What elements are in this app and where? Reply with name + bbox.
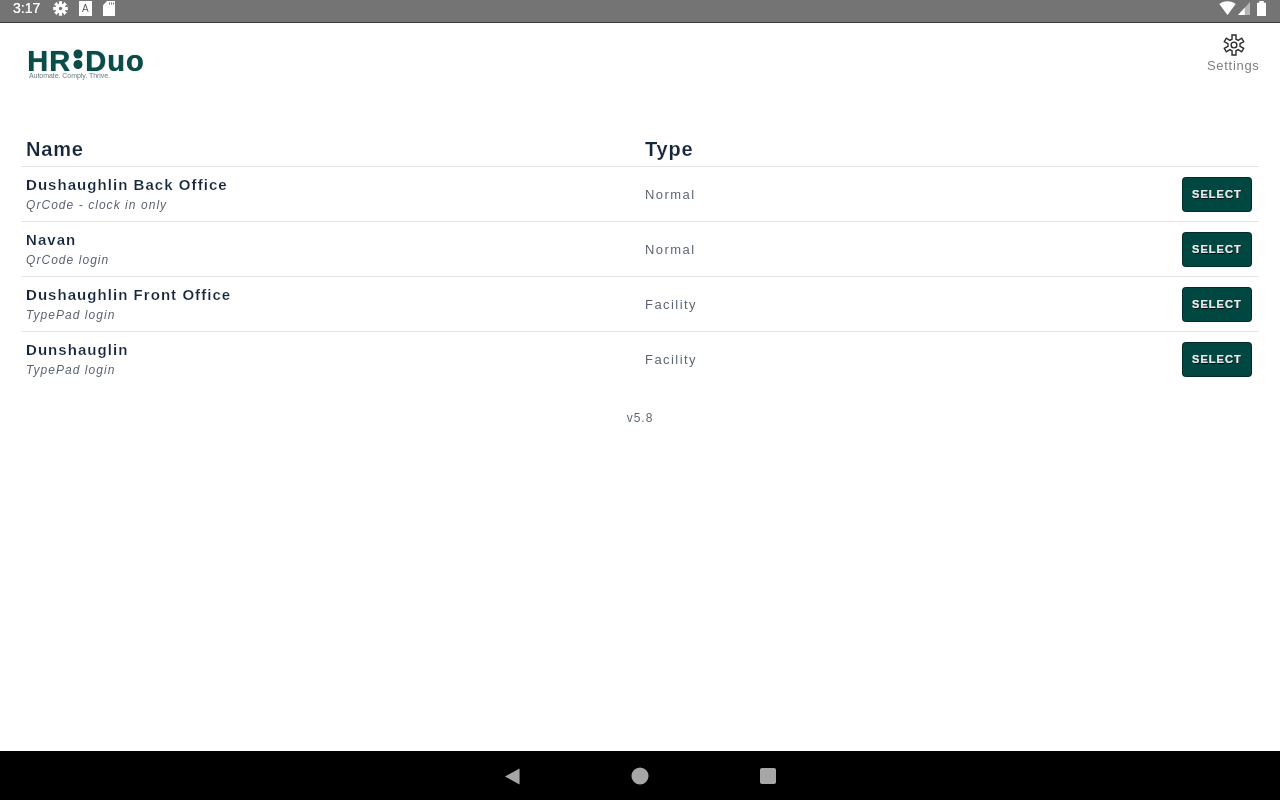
staticText: Dushaughlin Front Office bbox=[26, 286, 232, 303]
staticText: QrCode - clock in only bbox=[26, 198, 168, 211]
button[interactable]: Dunshauglin bbox=[0, 332, 1280, 387]
button[interactable]: Back bbox=[448, 751, 576, 800]
staticText: SELECT bbox=[1192, 353, 1242, 365]
button[interactable]: SELECT bbox=[1182, 342, 1252, 377]
button[interactable]: Home bbox=[576, 751, 704, 800]
staticText: SELECT bbox=[1192, 243, 1242, 255]
button[interactable]: SELECT bbox=[1182, 177, 1252, 212]
button[interactable]: SELECT bbox=[1182, 232, 1252, 267]
button[interactable]: Recents bbox=[704, 751, 832, 800]
staticText: SELECT bbox=[1192, 298, 1242, 310]
staticText: QrCode login bbox=[26, 253, 110, 266]
staticText: Normal bbox=[645, 242, 696, 257]
staticText: Normal bbox=[645, 187, 696, 202]
staticText: HR bbox=[27, 45, 71, 77]
staticText: Settings bbox=[1207, 58, 1260, 73]
button[interactable]: Dushaughlin Back Office bbox=[0, 167, 1280, 222]
staticText: 3:17 bbox=[13, 0, 41, 16]
staticText: Duo bbox=[85, 45, 145, 77]
staticText: v5.8 bbox=[0, 411, 1280, 424]
staticText: Facility bbox=[645, 352, 698, 367]
staticText: Facility bbox=[645, 297, 698, 312]
staticText: SELECT bbox=[1192, 188, 1242, 200]
button[interactable]: Settings bbox=[1207, 33, 1260, 73]
staticText: TypePad login bbox=[26, 308, 116, 321]
staticText: Navan bbox=[26, 231, 77, 248]
staticText: Dunshauglin bbox=[26, 341, 129, 358]
staticText: Automate. Comply. Thrive. bbox=[29, 72, 110, 80]
staticText: Name bbox=[26, 138, 84, 160]
staticText: A bbox=[82, 3, 89, 14]
button[interactable]: Navan bbox=[0, 222, 1280, 277]
button[interactable]: SELECT bbox=[1182, 287, 1252, 322]
staticText: TypePad login bbox=[26, 363, 116, 376]
staticText: Dushaughlin Back Office bbox=[26, 176, 228, 193]
staticText: Type bbox=[645, 138, 694, 160]
button[interactable]: Dushaughlin Front Office bbox=[0, 277, 1280, 332]
